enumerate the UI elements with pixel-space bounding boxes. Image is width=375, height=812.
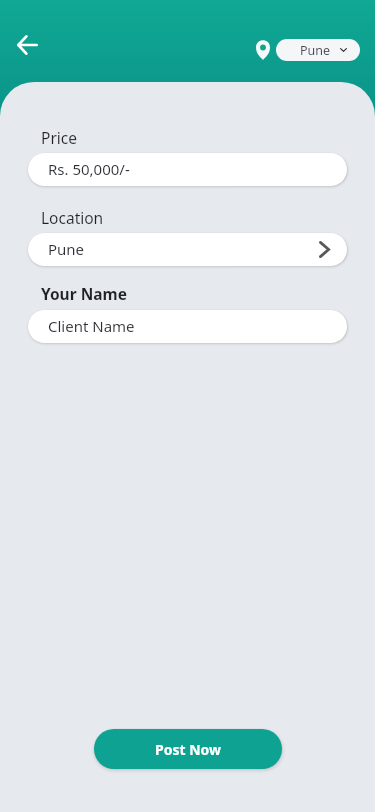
staticText: Price (41, 127, 77, 148)
button[interactable]: Select city: Pune (276, 39, 360, 61)
button[interactable]: Location (251, 36, 275, 64)
staticText: Pune (48, 239, 85, 259)
button[interactable]: Post Now (94, 729, 282, 769)
button[interactable]: Rs. 50,000/- (28, 153, 347, 186)
button[interactable]: Pune (28, 233, 347, 266)
staticText: Your Name (41, 283, 127, 304)
staticText: Rs. 50,000/- (48, 159, 130, 179)
button[interactable]: Back (6, 24, 48, 66)
staticText: Location (41, 207, 104, 228)
button[interactable]: Client Name (28, 310, 347, 343)
staticText: Post Now (155, 740, 222, 759)
staticText: Client Name (48, 316, 135, 336)
staticText: Pune (300, 42, 331, 59)
